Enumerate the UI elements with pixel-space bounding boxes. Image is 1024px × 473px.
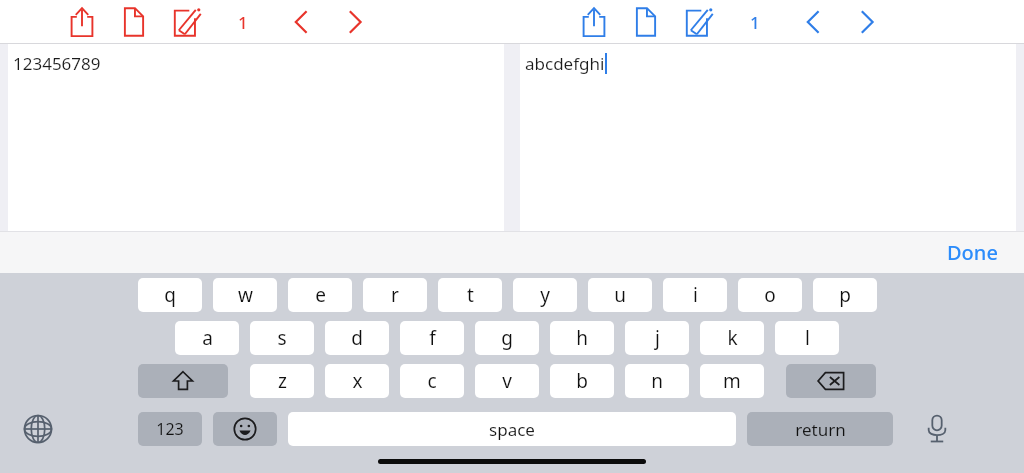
button[interactable]: Dictation: [915, 407, 959, 451]
button[interactable]: h: [550, 321, 614, 355]
staticText: m: [723, 368, 741, 394]
button[interactable]: f: [400, 321, 464, 355]
staticText: l: [805, 325, 810, 351]
button[interactable]: 1: [724, 0, 786, 44]
staticText: return: [795, 418, 846, 441]
button[interactable]: space: [288, 412, 736, 446]
button[interactable]: New document: [620, 0, 672, 44]
staticText: n: [651, 368, 663, 394]
staticText: p: [839, 282, 851, 308]
button[interactable]: p: [813, 278, 877, 312]
staticText: i: [693, 282, 698, 308]
button[interactable]: j: [625, 321, 689, 355]
button[interactable]: Done: [929, 233, 1016, 272]
button[interactable]: g: [475, 321, 539, 355]
button[interactable]: l: [775, 321, 839, 355]
staticText: g: [501, 325, 513, 351]
staticText: w: [238, 282, 253, 308]
button[interactable]: r: [363, 278, 427, 312]
staticText: a: [202, 325, 213, 351]
button[interactable]: abcdefghi: [520, 44, 1016, 231]
staticText: s: [277, 325, 287, 351]
button[interactable]: q: [138, 278, 202, 312]
button[interactable]: Shift: [138, 364, 228, 398]
staticText: 123456789: [13, 52, 101, 75]
staticText: h: [576, 325, 588, 351]
staticText: r: [391, 282, 399, 308]
staticText: e: [315, 282, 326, 308]
staticText: 1: [750, 11, 760, 34]
button[interactable]: y: [513, 278, 577, 312]
button[interactable]: return: [747, 412, 893, 446]
staticText: x: [352, 368, 363, 394]
button[interactable]: x: [325, 364, 389, 398]
button[interactable]: 1: [212, 0, 274, 44]
button[interactable]: Previous: [786, 0, 840, 44]
button[interactable]: Compose: [160, 0, 212, 44]
staticText: t: [467, 282, 474, 308]
staticText: y: [540, 282, 550, 308]
button[interactable]: m: [700, 364, 764, 398]
staticText: b: [576, 368, 588, 394]
button[interactable]: k: [700, 321, 764, 355]
staticText: u: [614, 282, 626, 308]
button[interactable]: w: [213, 278, 277, 312]
button[interactable]: Previous: [274, 0, 328, 44]
button[interactable]: n: [625, 364, 689, 398]
button[interactable]: u: [588, 278, 652, 312]
staticText: f: [429, 325, 436, 351]
button[interactable]: Share: [568, 0, 620, 44]
button[interactable]: b: [550, 364, 614, 398]
button[interactable]: Next: [840, 0, 894, 44]
staticText: space: [489, 418, 535, 441]
button[interactable]: s: [250, 321, 314, 355]
button[interactable]: i: [663, 278, 727, 312]
staticText: v: [502, 368, 512, 394]
staticText: d: [351, 325, 363, 351]
button[interactable]: t: [438, 278, 502, 312]
button[interactable]: New document: [108, 0, 160, 44]
button[interactable]: c: [400, 364, 464, 398]
button[interactable]: Share: [56, 0, 108, 44]
button[interactable]: 123: [138, 412, 202, 446]
button[interactable]: o: [738, 278, 802, 312]
button[interactable]: e: [288, 278, 352, 312]
staticText: 123: [156, 418, 184, 440]
button[interactable]: Next: [328, 0, 382, 44]
button[interactable]: d: [325, 321, 389, 355]
button[interactable]: 123456789: [8, 44, 504, 231]
staticText: j: [655, 325, 660, 351]
staticText: c: [427, 368, 437, 394]
staticText: Done: [947, 239, 998, 266]
button[interactable]: Compose: [672, 0, 724, 44]
button[interactable]: a: [175, 321, 239, 355]
button[interactable]: Backspace: [786, 364, 876, 398]
staticText: o: [764, 282, 776, 308]
staticText: 1: [238, 11, 248, 34]
button[interactable]: z: [250, 364, 314, 398]
staticText: k: [727, 325, 738, 351]
staticText: abcdefghi: [525, 52, 605, 75]
button[interactable]: Change keyboard: [16, 407, 60, 451]
staticText: z: [278, 368, 287, 394]
button[interactable]: v: [475, 364, 539, 398]
staticText: q: [164, 282, 176, 308]
button[interactable]: Emoji: [213, 412, 277, 446]
